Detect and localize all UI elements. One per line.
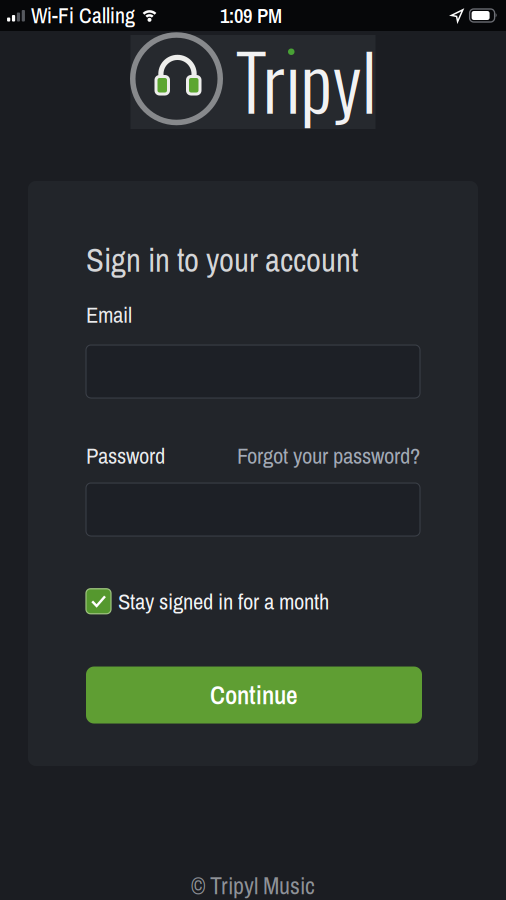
staticText: Sign in to your account [86, 238, 358, 282]
staticText: © Tripyl Music [191, 869, 315, 900]
staticText: Continue [210, 678, 298, 712]
button[interactable]: Email [86, 345, 420, 398]
button[interactable]: Password [86, 483, 420, 536]
staticText: Password [86, 440, 165, 471]
button[interactable]: Forgot your password? [237, 440, 420, 471]
staticText: Forgot your password? [237, 440, 420, 471]
staticText: Email [86, 299, 132, 330]
staticText: Wi-Fi Calling [31, 1, 135, 30]
button[interactable]: Continue [86, 666, 422, 723]
staticText: Trıpyl [235, 23, 376, 136]
staticText: 1:09 PM [220, 2, 282, 29]
button[interactable]: Stay signed in for a month [86, 586, 329, 616]
staticText: Stay signed in for a month [118, 586, 329, 616]
